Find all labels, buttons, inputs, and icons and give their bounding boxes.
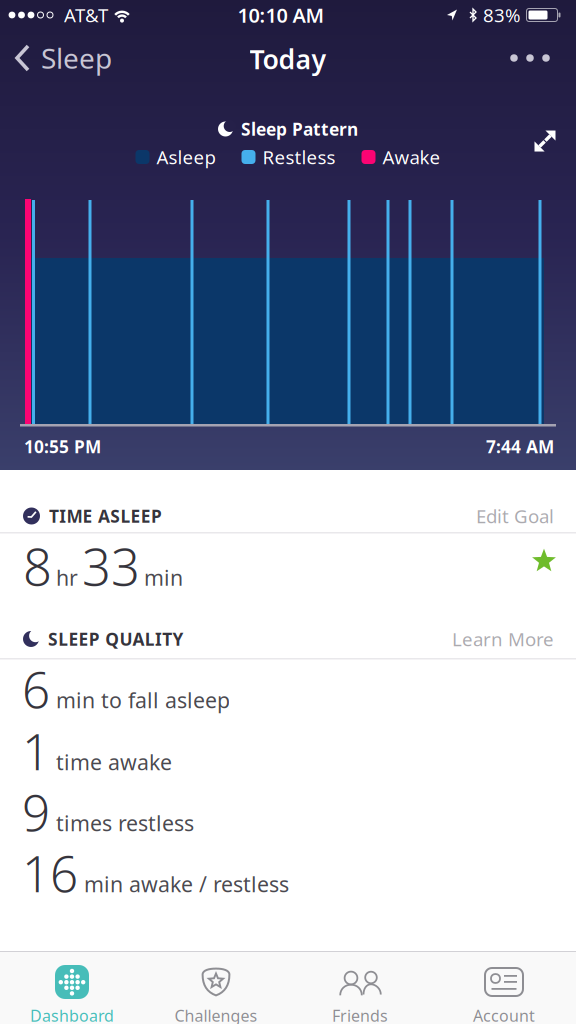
staticText: Sleep Pattern bbox=[241, 117, 358, 140]
button[interactable]: Account bbox=[432, 952, 576, 1024]
staticText: Awake bbox=[382, 145, 440, 169]
staticText: min to fall asleep bbox=[56, 686, 230, 714]
button[interactable]: Back bbox=[0, 36, 112, 80]
staticText: Account bbox=[473, 1005, 535, 1024]
staticText: SLEEP QUALITY bbox=[48, 627, 183, 650]
staticText: 16 bbox=[22, 840, 78, 906]
staticText: 8 bbox=[23, 532, 52, 600]
staticText: 10:55 PM bbox=[24, 435, 101, 458]
staticText: hr bbox=[56, 563, 78, 591]
button[interactable]: Friends bbox=[288, 952, 432, 1024]
staticText: Today bbox=[249, 41, 326, 77]
staticText: AT&T bbox=[64, 3, 108, 27]
staticText: min bbox=[144, 563, 183, 591]
staticText: TIME ASLEEP bbox=[49, 504, 162, 527]
staticText: Asleep bbox=[156, 145, 215, 169]
staticText: times restless bbox=[56, 809, 194, 837]
staticText: Edit Goal bbox=[476, 504, 554, 528]
staticText: Challenges bbox=[174, 1005, 257, 1024]
staticText: time awake bbox=[56, 748, 172, 776]
staticText: Dashboard bbox=[30, 1005, 114, 1024]
staticText: 83% bbox=[483, 3, 521, 27]
staticText: 33 bbox=[82, 532, 140, 600]
button[interactable]: Challenges bbox=[144, 952, 288, 1024]
staticText: Friends bbox=[332, 1005, 388, 1024]
button[interactable]: Dashboard bbox=[0, 952, 144, 1024]
button[interactable]: Edit Goal bbox=[476, 504, 554, 528]
button[interactable]: More options bbox=[500, 44, 560, 72]
staticText: 9 bbox=[22, 779, 50, 845]
button[interactable]: Learn More bbox=[452, 627, 554, 651]
staticText: min awake / restless bbox=[84, 870, 289, 898]
staticText: Learn More bbox=[452, 627, 554, 651]
staticText: Restless bbox=[262, 145, 335, 169]
staticText: 10:10 AM bbox=[237, 2, 324, 28]
staticText: 1 bbox=[22, 718, 50, 784]
staticText: 7:44 AM bbox=[486, 435, 554, 458]
staticText: 6 bbox=[22, 656, 50, 722]
button[interactable]: Expand chart bbox=[525, 121, 565, 161]
staticText: Sleep bbox=[41, 39, 112, 77]
